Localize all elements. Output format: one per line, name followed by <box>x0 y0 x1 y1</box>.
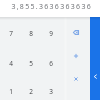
button[interactable]: Plus <box>62 44 90 67</box>
button[interactable]: Backspace <box>62 21 90 44</box>
button[interactable]: 2 <box>21 77 41 100</box>
staticText: 3,855.3636363636 <box>0 2 92 12</box>
staticText: 9 <box>49 29 53 38</box>
button[interactable]: 5 <box>21 49 41 78</box>
button[interactable]: 1 <box>1 77 21 100</box>
staticText: 4 <box>9 59 13 68</box>
button[interactable]: 9 <box>41 19 61 48</box>
staticText: 7 <box>9 29 13 38</box>
button[interactable]: Show advanced functions <box>90 16 100 100</box>
staticText: 5 <box>29 59 33 68</box>
staticText: 8 <box>29 29 33 38</box>
staticText: 6 <box>49 59 53 68</box>
button[interactable]: 3,855.3636363636 <box>0 0 100 17</box>
button[interactable]: 7 <box>1 19 21 48</box>
staticText: 1 <box>9 87 13 96</box>
button[interactable]: 4 <box>1 49 21 78</box>
button[interactable]: 8 <box>21 19 41 48</box>
button[interactable]: 3 <box>41 77 61 100</box>
staticText: 2 <box>29 87 33 96</box>
staticText: 3 <box>49 87 53 96</box>
button[interactable]: 6 <box>41 49 61 78</box>
button[interactable]: Multiply <box>62 67 90 90</box>
